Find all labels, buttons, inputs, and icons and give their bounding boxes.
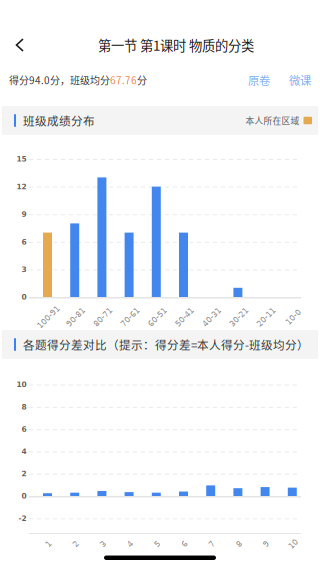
staticText: -2	[18, 514, 26, 523]
staticText: 100-91	[34, 312, 62, 322]
staticText: 得分94.0分，班级均分	[9, 73, 110, 87]
staticText: 2	[21, 469, 26, 478]
staticText: 90-81	[64, 312, 87, 322]
staticText: 10-0	[284, 312, 302, 322]
staticText: 本人所在区域	[245, 114, 299, 127]
button[interactable]: Back	[0, 30, 44, 60]
staticText: 50-41	[173, 312, 196, 322]
staticText: 8	[21, 402, 26, 411]
staticText: 8	[236, 539, 241, 549]
button[interactable]: 原卷	[244, 72, 274, 88]
staticText: 2	[73, 539, 78, 549]
staticText: 10	[16, 380, 26, 389]
staticText: 4	[128, 539, 133, 549]
staticText: 0	[21, 293, 26, 301]
staticText: 3	[21, 265, 26, 274]
staticText: 12	[16, 182, 26, 191]
staticText: 40-31	[200, 312, 223, 322]
staticText: 9	[21, 210, 26, 219]
staticText: 6	[21, 425, 26, 433]
staticText: 70-61	[119, 312, 142, 322]
staticText: 10	[288, 539, 298, 549]
staticText: 9	[264, 539, 269, 549]
staticText: 67.76	[110, 73, 137, 87]
staticText: 20-11	[255, 312, 278, 322]
staticText: 微课	[289, 72, 311, 88]
staticText: 30-21	[227, 312, 250, 322]
staticText: 3	[100, 539, 105, 549]
staticText: 各题得分差对比（提示：得分差=本人得分-班级均分）	[23, 336, 309, 353]
staticText: 原卷	[248, 72, 270, 88]
staticText: 第一节 第1课时 物质的分类	[98, 35, 254, 55]
staticText: 6	[21, 237, 26, 246]
staticText: 班级成绩分布	[23, 112, 95, 129]
staticText: 5	[155, 539, 160, 549]
staticText: 80-71	[91, 312, 114, 322]
staticText: 0	[21, 492, 26, 500]
staticText: 6	[182, 539, 187, 549]
staticText: 15	[16, 155, 26, 163]
staticText: 60-51	[146, 312, 169, 322]
staticText: 7	[209, 539, 214, 549]
staticText: 4	[21, 447, 26, 456]
button[interactable]: 微课	[274, 72, 315, 88]
staticText: 分	[137, 73, 147, 87]
staticText: 1	[46, 539, 51, 549]
